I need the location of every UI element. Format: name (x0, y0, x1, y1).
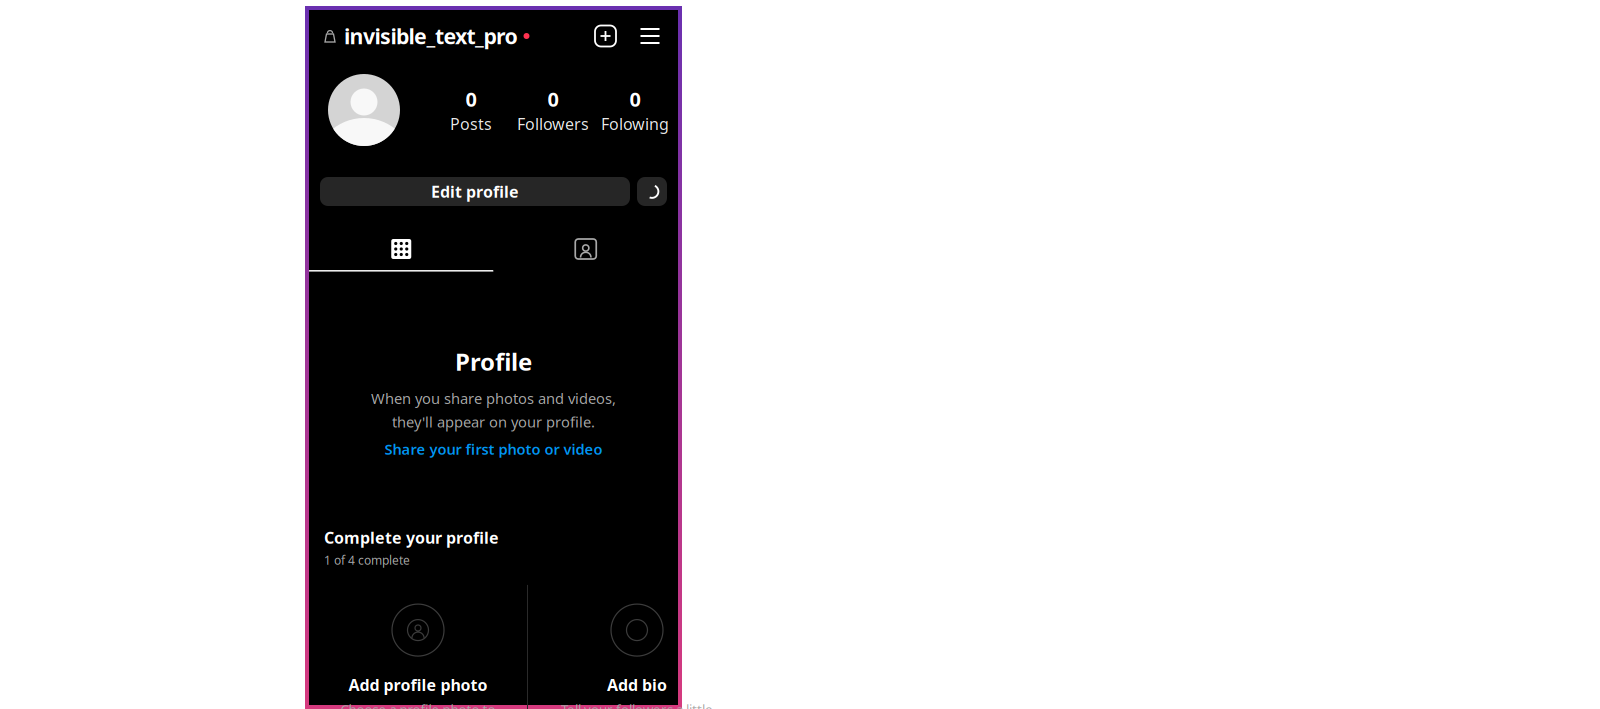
button[interactable]: 0 (512, 86, 594, 134)
staticText: Tell your followers a little (561, 700, 713, 709)
staticText: Followers (517, 113, 589, 134)
staticText: Add profile photo (348, 674, 487, 695)
staticText: 1 of 4 complete (324, 552, 410, 568)
button[interactable]: Share your first photo or video (384, 431, 602, 459)
staticText: Profile (455, 346, 532, 377)
button[interactable]: Menu (616, 27, 660, 45)
staticText: Edit profile (431, 181, 519, 202)
staticText: invisible_text_pro (344, 22, 517, 50)
button[interactable]: Discover people (637, 177, 667, 206)
button[interactable]: Posts grid (309, 228, 493, 270)
staticText: 0 (547, 86, 558, 112)
button[interactable]: Add bio (528, 582, 746, 709)
button[interactable]: Tagged (493, 228, 678, 270)
button[interactable]: 0 (594, 86, 676, 134)
staticText: Complete your profile (324, 527, 499, 548)
staticText: Add bio (607, 674, 667, 695)
staticText: 0 (629, 86, 640, 112)
staticText: 0 (465, 86, 476, 112)
staticText: Share your first photo or video (384, 439, 602, 459)
staticText: Folowing (601, 113, 669, 134)
button[interactable]: 0 (430, 86, 512, 134)
staticText: When you share photos and videos, (371, 388, 616, 408)
button[interactable]: New post (595, 25, 616, 46)
button[interactable]: Edit profile (320, 177, 630, 206)
staticText: Posts (450, 113, 492, 134)
button[interactable]: Add profile photo (309, 582, 527, 709)
staticText: Choose a profile photo to (340, 700, 495, 709)
staticText: they'll appear on your profile. (392, 412, 595, 431)
